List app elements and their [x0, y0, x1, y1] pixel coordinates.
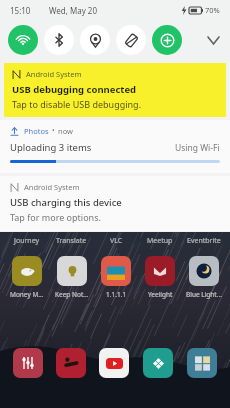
button[interactable]	[189, 256, 219, 286]
staticText: Tap to disable USB debugging.	[12, 98, 142, 110]
button[interactable]	[57, 256, 87, 286]
button[interactable]: Android System	[4, 63, 226, 117]
staticText: 1.1.1.1	[106, 290, 127, 299]
staticText: 15:10	[10, 5, 31, 16]
button[interactable]	[12, 256, 42, 286]
button[interactable]: Bluetooth	[44, 25, 74, 55]
staticText: Using Wi-Fi	[175, 142, 220, 154]
staticText: Journey	[14, 236, 40, 246]
staticText: Eventbrite	[187, 236, 221, 246]
button[interactable]: Auto rotate	[116, 25, 146, 55]
button[interactable]: Expand quick settings	[200, 27, 226, 53]
button[interactable]: Add tile	[152, 25, 182, 55]
button[interactable]: App 13	[143, 348, 173, 378]
staticText: Translate	[56, 236, 87, 246]
button[interactable]: Location	[80, 25, 110, 55]
staticText: •	[52, 126, 55, 136]
staticText: Android System	[26, 69, 82, 79]
staticText: Meetup	[147, 236, 173, 246]
button[interactable]: App 12	[99, 348, 129, 378]
staticText: Tap for more options.	[10, 211, 101, 223]
staticText: Blue Light...	[186, 290, 222, 299]
button[interactable]: Android System	[0, 176, 230, 231]
staticText: VLC	[110, 236, 123, 246]
staticText: Android System	[24, 182, 80, 192]
button[interactable]: App 10	[13, 348, 43, 378]
button[interactable]	[101, 256, 131, 286]
button[interactable]: Wi-Fi	[8, 25, 38, 55]
button[interactable]	[145, 256, 175, 286]
staticText: USB debugging connected	[12, 83, 137, 96]
staticText: Money M...	[10, 290, 44, 299]
button[interactable]: Photos	[0, 120, 230, 173]
staticText: Uploading 3 items	[10, 141, 92, 154]
staticText: Photos	[24, 126, 49, 136]
staticText: Wed, May 20	[49, 5, 97, 16]
staticText: 70%	[205, 5, 220, 15]
staticText: Keep Not...	[55, 290, 89, 299]
button[interactable]: App 11	[56, 348, 86, 378]
staticText: now	[58, 126, 73, 136]
staticText: Yeelight	[148, 290, 173, 299]
staticText: USB charging this device	[10, 196, 122, 209]
button[interactable]: App 14	[187, 348, 217, 378]
